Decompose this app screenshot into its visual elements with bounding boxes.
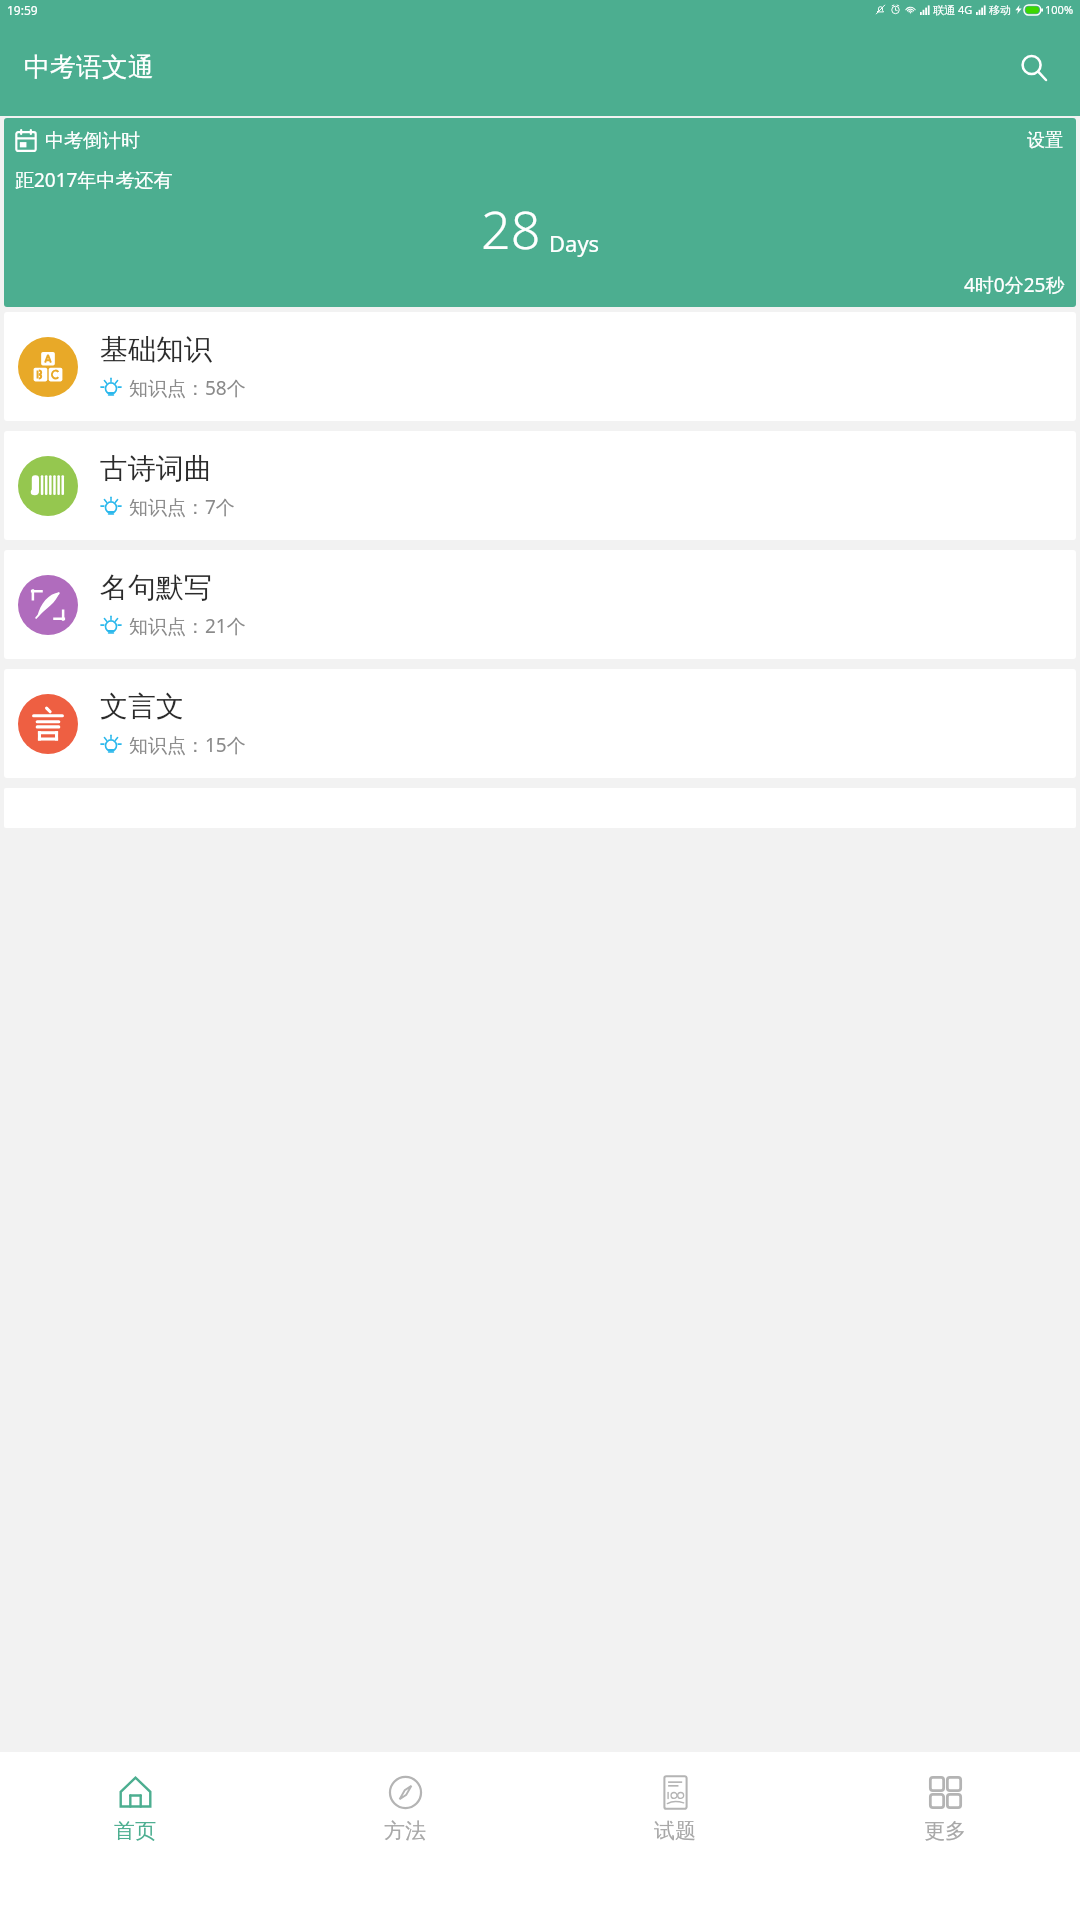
staticText: 首页 — [114, 1818, 156, 1844]
staticText: 19:59 — [7, 2, 38, 18]
staticText: 知识点：7个 — [129, 494, 235, 520]
staticText: 联通 — [933, 3, 955, 17]
staticText: 中考语文通 — [24, 51, 154, 84]
staticText: 试题 — [654, 1818, 696, 1844]
button[interactable]: 文言文 — [4, 669, 1076, 778]
staticText: 距2017年中考还有 — [15, 167, 173, 193]
staticText: 名句默写 — [100, 570, 212, 605]
button[interactable]: 设置 — [1025, 127, 1065, 154]
staticText: 4时0分25秒 — [964, 272, 1065, 298]
button[interactable]: 更多 — [810, 1752, 1080, 1920]
button[interactable]: Search — [1010, 44, 1058, 92]
staticText: 设置 — [1027, 129, 1063, 152]
staticText: 知识点：21个 — [129, 613, 246, 639]
staticText: 28 — [481, 193, 541, 264]
staticText: 4G — [958, 2, 973, 17]
staticText: Days — [549, 228, 600, 258]
staticText: 知识点：58个 — [129, 375, 246, 401]
staticText: 文言文 — [100, 689, 184, 724]
staticText: 移动 — [989, 3, 1011, 17]
staticText: 100% — [1045, 2, 1074, 17]
button[interactable]: 首页 — [0, 1752, 270, 1920]
button[interactable]: 名句默写 — [4, 550, 1076, 659]
staticText: 知识点：15个 — [129, 732, 246, 758]
staticText: 古诗词曲 — [100, 451, 212, 486]
staticText: 方法 — [384, 1818, 426, 1844]
button[interactable]: 方法 — [270, 1752, 540, 1920]
staticText: 基础知识 — [100, 332, 212, 367]
button[interactable]: 古诗词曲 — [4, 431, 1076, 540]
staticText: 更多 — [924, 1818, 966, 1844]
button[interactable]: 试题 — [540, 1752, 810, 1920]
staticText: 中考倒计时 — [45, 129, 140, 153]
button[interactable]: 中考倒计时 — [4, 118, 1076, 307]
button[interactable]: 基础知识 — [4, 312, 1076, 421]
